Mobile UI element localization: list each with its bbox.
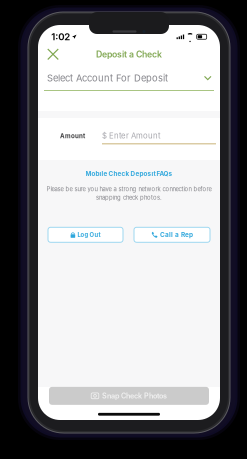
- button[interactable]: Snap Check Photos: [49, 387, 209, 405]
- staticText: $ Enter Amount: [102, 131, 161, 140]
- staticText: Select Account For Deposit: [47, 72, 168, 84]
- staticText: Snap Check Photos: [102, 391, 167, 400]
- staticText: snapping check photos.: [96, 194, 162, 201]
- button[interactable]: Mobile Check Deposit FAQs: [85, 170, 172, 178]
- button[interactable]: Select Account For Deposit: [38, 66, 220, 111]
- staticText: Log Out: [77, 231, 100, 238]
- staticText: Amount: [60, 132, 85, 140]
- button[interactable]: Call a Rep: [134, 227, 210, 242]
- staticText: Please be sure you have a strong network…: [46, 186, 211, 193]
- button[interactable]: Close: [42, 46, 64, 62]
- staticText: Mobile Check Deposit FAQs: [85, 170, 172, 178]
- staticText: 1:02: [51, 31, 70, 42]
- staticText: Deposit a Check: [96, 49, 162, 59]
- staticText: Call a Rep: [160, 231, 193, 239]
- button[interactable]: Log Out: [48, 227, 123, 242]
